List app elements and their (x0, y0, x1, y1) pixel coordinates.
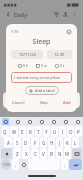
staticText: J (59, 140, 61, 146)
button[interactable]: 10/11/24 (11, 50, 43, 59)
button[interactable]: I started using a new pillow (11, 72, 72, 83)
staticText: D (24, 140, 28, 146)
staticText: Z (16, 151, 19, 157)
staticText: Q (3, 129, 7, 135)
button[interactable]: , (12, 159, 19, 170)
button[interactable]: X (22, 148, 30, 159)
button[interactable]: T (35, 126, 42, 137)
staticText: Add (63, 100, 71, 105)
staticText: H (50, 140, 54, 146)
staticText: L (74, 140, 77, 146)
staticText: N (58, 151, 62, 157)
staticText: . (64, 162, 66, 168)
button[interactable]: Shift (1, 148, 12, 159)
button[interactable]: G (40, 137, 47, 148)
staticText: B (50, 151, 53, 157)
button[interactable]: . (61, 159, 68, 170)
button[interactable]: Add a label (25, 86, 59, 95)
staticText: W (12, 129, 17, 135)
staticText: Y (45, 129, 48, 135)
button[interactable]: A (4, 137, 12, 148)
button[interactable]: More (70, 10, 79, 19)
staticText: I started using a new pillow (14, 75, 61, 80)
button[interactable]: Clipboard (14, 118, 21, 125)
button[interactable]: Y (43, 126, 50, 137)
button[interactable]: 12:30 (47, 50, 72, 59)
button[interactable]: Skip (39, 99, 49, 106)
button[interactable]: C (31, 148, 39, 159)
button[interactable]: Google (2, 118, 9, 125)
button[interactable]: 0 m (35, 63, 48, 68)
staticText: O (69, 129, 73, 135)
button[interactable]: E (19, 126, 26, 137)
button[interactable]: Walk (3, 92, 40, 108)
button[interactable]: 0 s (54, 63, 66, 68)
button[interactable]: Z (13, 148, 21, 159)
staticText: R (29, 129, 32, 135)
staticText: 0 s (60, 63, 65, 68)
button[interactable]: Theme (62, 118, 69, 125)
staticText: Skip (40, 100, 48, 105)
button[interactable]: Share (61, 10, 70, 19)
staticText: M (65, 151, 70, 157)
button[interactable]: Back (4, 10, 13, 19)
staticText: 10/11/24 (19, 52, 36, 57)
button[interactable]: Sticker (38, 118, 45, 125)
button[interactable]: U (51, 126, 58, 137)
staticText: Sleep (11, 37, 72, 47)
staticText: K (66, 140, 69, 146)
button[interactable]: Settings (50, 118, 57, 125)
button[interactable]: Add (62, 99, 72, 106)
button[interactable]: V (40, 148, 47, 159)
staticText: A (7, 140, 10, 146)
button[interactable]: W (10, 126, 18, 137)
button[interactable]: Weight (43, 92, 80, 108)
button[interactable]: K (64, 137, 71, 148)
button[interactable]: Cancel (11, 99, 26, 106)
button[interactable]: P (75, 126, 82, 137)
staticText: Cancel (12, 100, 25, 105)
button[interactable]: N (56, 148, 63, 159)
staticText: G (42, 140, 46, 146)
button[interactable]: F (31, 137, 39, 148)
button[interactable]: Backspace (72, 148, 82, 159)
button[interactable]: J (56, 137, 63, 148)
button[interactable]: D (22, 137, 30, 148)
staticText: V (42, 151, 45, 157)
button[interactable]: Filter (52, 10, 61, 19)
staticText: F (34, 140, 37, 146)
button[interactable]: O (67, 126, 74, 137)
button[interactable]: Voice input (74, 118, 81, 125)
staticText: 7:15 (11, 29, 19, 34)
button[interactable]: Info (65, 28, 72, 35)
staticText: ?123 (3, 163, 10, 167)
button[interactable]: Symbols (1, 159, 11, 170)
staticText: X (25, 151, 28, 157)
staticText: 12:30 (54, 52, 65, 57)
button[interactable]: I (59, 126, 66, 137)
staticText: S (16, 140, 19, 146)
button[interactable]: Q (1, 126, 9, 137)
button[interactable]: 8 h (17, 63, 29, 68)
button[interactable]: GIF (26, 118, 33, 125)
staticText: T (37, 129, 40, 135)
staticText: Weight (53, 94, 70, 101)
button[interactable]: B (48, 148, 55, 159)
button[interactable]: R (27, 126, 34, 137)
staticText: U (53, 129, 57, 135)
button[interactable]: H (48, 137, 55, 148)
button[interactable]: Emoji (20, 159, 27, 170)
button[interactable]: L (72, 137, 79, 148)
button[interactable]: M (64, 148, 71, 159)
staticText: Add a label (35, 88, 55, 93)
button[interactable]: Enter (69, 159, 82, 170)
staticText: I (62, 129, 64, 135)
staticText: E (21, 129, 24, 135)
button[interactable]: S (13, 137, 21, 148)
staticText: 8 h (23, 63, 28, 68)
staticText: Daily (14, 11, 28, 18)
staticText: P (77, 129, 80, 135)
staticText: 7,530 stp (14, 102, 29, 107)
